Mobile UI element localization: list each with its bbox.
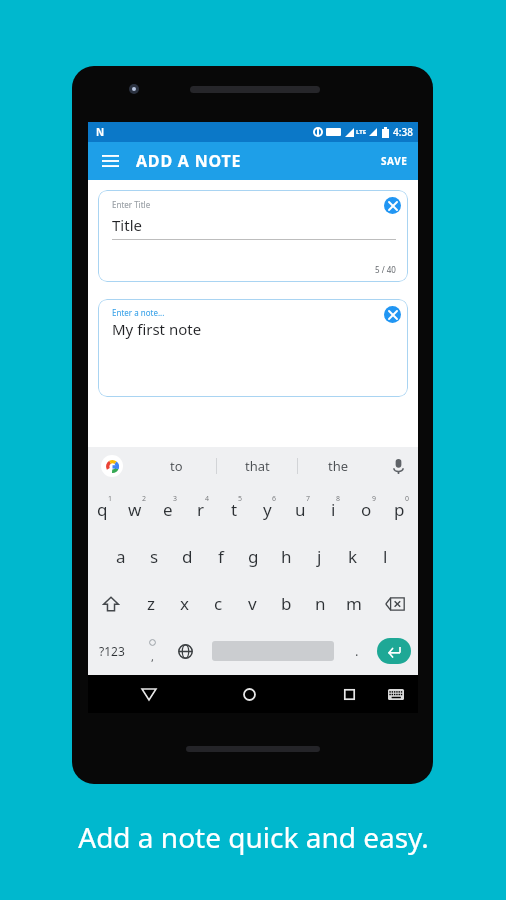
button[interactable]: e [154,485,187,533]
staticText: w [128,498,142,521]
button[interactable]: SAVE [371,146,418,176]
staticText: N [96,125,105,139]
button[interactable]: c [201,580,235,627]
staticText: a [116,545,126,568]
button[interactable]: j [303,533,336,580]
staticText: . [355,642,359,660]
staticText: x [180,592,189,615]
staticText: 0 [405,494,410,504]
staticText: 9 [372,494,377,504]
button[interactable]: t [220,485,253,533]
button[interactable]: k [336,533,369,580]
staticText: r [197,498,205,521]
staticText: b [281,592,292,615]
staticText: h [281,545,292,568]
button[interactable]: Enter a note... [98,299,408,397]
button[interactable]: p [385,485,418,533]
button[interactable]: s [138,533,171,580]
button[interactable]: q [88,485,121,533]
button[interactable]: h [270,533,303,580]
staticText: j [317,545,322,568]
staticText: 6 [272,494,277,504]
staticText: 8 [336,494,341,504]
button[interactable]: Enter Title [98,190,408,282]
staticText: d [182,545,193,568]
button[interactable]: f [204,533,237,580]
staticText: e [163,498,173,521]
staticText: f [218,545,224,568]
staticText: that [245,457,270,475]
staticText: l [383,545,388,568]
button[interactable] [202,627,344,675]
staticText: 2 [142,494,147,504]
staticText: 4 [205,494,210,504]
staticText: 5 / 40 [375,264,396,275]
button[interactable]: r [187,485,220,533]
button[interactable]: Voice input [378,447,418,485]
staticText: g [248,545,259,568]
button[interactable]: Open navigation menu [97,148,123,174]
staticText: LTE [356,128,367,136]
staticText: t [231,498,238,521]
button[interactable]: x [167,580,201,627]
button[interactable]: Clear [384,197,401,214]
staticText: 7 [306,494,311,504]
button[interactable]: y [253,485,286,533]
button[interactable]: Google [88,447,136,485]
button[interactable]: a [104,533,138,580]
staticText: SAVE [381,154,408,168]
staticText: s [150,545,159,568]
staticText: Title [112,215,142,235]
staticText: i [331,498,336,521]
button[interactable]: Clear [384,306,401,323]
staticText: 4:38 [393,125,413,139]
staticText: y [263,498,272,521]
button[interactable]: Back [132,677,166,711]
staticText: the [328,457,349,475]
button[interactable]: that [217,447,297,485]
staticText: v [248,592,257,615]
button[interactable]: o [352,485,385,533]
staticText: ADD A NOTE [136,150,242,172]
button[interactable]: w [121,485,154,533]
staticText: m [346,592,362,615]
button[interactable]: Home [232,677,266,711]
button[interactable]: Backspace [371,580,418,627]
button[interactable]: z [134,580,167,627]
button[interactable]: Enter [377,638,411,664]
button[interactable]: Change language [168,627,202,675]
staticText: 5 [238,494,243,504]
button[interactable]: l [369,533,402,580]
button[interactable]: Emoji and comma [136,627,168,675]
staticText: u [295,498,306,521]
staticText: o [361,498,372,521]
button[interactable]: v [235,580,269,627]
staticText: Enter a note... [112,307,165,318]
staticText: p [394,498,405,521]
button[interactable]: Shift [88,580,134,627]
button[interactable]: to [136,447,216,485]
staticText: q [97,498,108,521]
button[interactable]: the [298,447,378,485]
staticText: My first note [112,319,202,339]
staticText: Add a note quick and easy. [78,818,429,856]
staticText: 1 [108,494,113,504]
button[interactable]: n [303,580,337,627]
staticText: c [214,592,223,615]
button[interactable]: ?123 [88,627,136,675]
button[interactable]: Recent apps [332,677,366,711]
staticText: 3 [173,494,178,504]
button[interactable]: Switch keyboard [380,678,412,710]
button[interactable]: i [319,485,352,533]
button[interactable]: g [237,533,270,580]
button[interactable]: b [269,580,303,627]
staticText: z [147,592,155,615]
staticText: k [348,545,358,568]
button[interactable]: . [344,627,370,675]
button[interactable]: d [171,533,204,580]
staticText: to [170,457,183,475]
button[interactable]: m [337,580,371,627]
button[interactable]: u [286,485,319,533]
staticText: ?123 [99,643,125,659]
staticText: Enter Title [112,199,151,210]
